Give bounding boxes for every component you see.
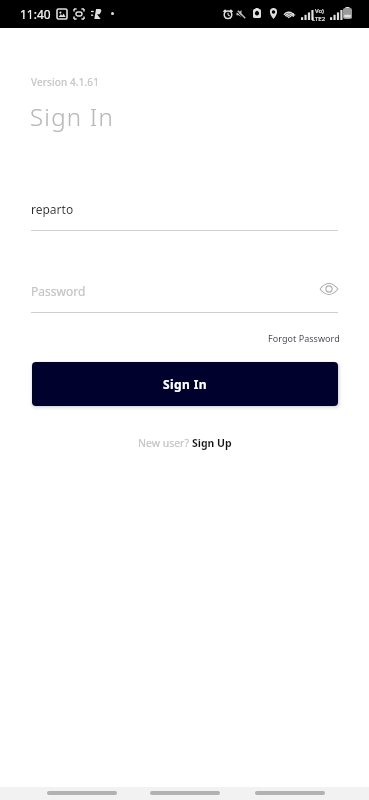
button[interactable]: Sign In [32, 362, 338, 406]
staticText: LTE2 [312, 15, 326, 23]
staticText: Forgot Password [268, 332, 340, 344]
staticText: Vo) [315, 7, 324, 15]
button[interactable]: Recents [255, 791, 325, 795]
staticText: Sign Up [192, 436, 232, 450]
staticText: Password [31, 283, 86, 299]
button[interactable]: Forgot Password [262, 328, 346, 348]
staticText: Sign In [163, 376, 207, 392]
button[interactable]: New user? [138, 436, 232, 450]
staticText: Version 4.1.61 [31, 75, 100, 89]
button[interactable]: Back [47, 791, 117, 795]
button[interactable]: Show password [317, 277, 341, 301]
button[interactable]: Home [150, 791, 220, 795]
staticText: New user? [138, 436, 192, 450]
staticText: Sign In [30, 100, 115, 133]
staticText: 11:40 [20, 6, 51, 22]
staticText: reparto [31, 201, 74, 217]
